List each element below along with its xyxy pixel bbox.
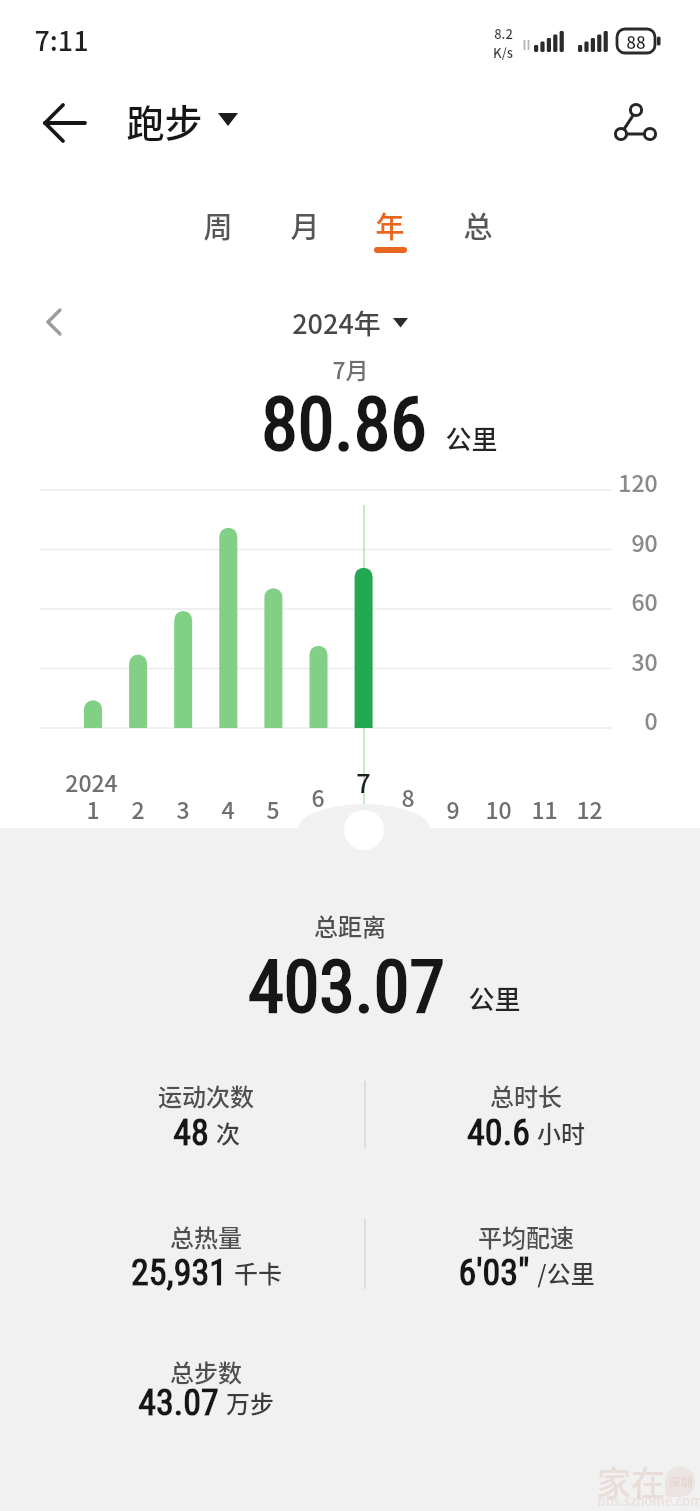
- staticText: 6'03": [458, 1252, 530, 1294]
- staticText: 43.07: [138, 1382, 219, 1424]
- staticText: 120: [618, 465, 658, 498]
- staticText: 1: [86, 792, 100, 825]
- staticText: 总距离: [314, 908, 386, 943]
- staticText: 千卡: [234, 1255, 282, 1290]
- button[interactable]: 2024年: [292, 303, 408, 342]
- button[interactable]: 年: [347, 202, 433, 248]
- button[interactable]: 月: [262, 202, 348, 248]
- staticText: 3: [176, 792, 190, 825]
- staticText: 9: [446, 792, 460, 825]
- staticText: 周: [203, 204, 233, 246]
- staticText: 平均配速: [478, 1219, 574, 1254]
- staticText: 家在: [597, 1457, 665, 1506]
- staticText: 小时: [537, 1115, 585, 1150]
- staticText: 总: [463, 204, 493, 246]
- staticText: 7: [356, 763, 371, 801]
- staticText: 总热量: [170, 1219, 242, 1254]
- button[interactable]: [34, 301, 78, 345]
- staticText: 80.86: [261, 381, 427, 468]
- staticText: 30: [631, 644, 658, 677]
- staticText: 10: [485, 792, 512, 825]
- staticText: 12: [576, 792, 603, 825]
- staticText: 11: [531, 792, 558, 825]
- staticText: 4: [221, 792, 235, 825]
- staticText: 万步: [226, 1385, 274, 1420]
- staticText: 2024年: [292, 303, 381, 342]
- staticText: 48: [173, 1112, 209, 1154]
- staticText: 5: [266, 792, 280, 825]
- staticText: 年: [375, 204, 405, 246]
- staticText: K/s: [493, 43, 513, 62]
- staticText: 公里: [445, 419, 498, 457]
- button[interactable]: 周: [175, 202, 261, 248]
- button[interactable]: [596, 86, 672, 156]
- staticText: 7:11: [34, 20, 89, 59]
- staticText: 次: [216, 1115, 240, 1150]
- staticText: 40.6: [467, 1112, 530, 1154]
- button[interactable]: 跑步: [126, 93, 238, 147]
- staticText: 2: [131, 792, 145, 825]
- staticText: 深圳: [668, 1473, 693, 1490]
- staticText: 2024: [65, 765, 118, 798]
- staticText: 90: [631, 525, 658, 558]
- staticText: 月: [290, 204, 320, 246]
- staticText: 0: [644, 703, 658, 736]
- staticText: bbs.szhome.com: [597, 1491, 700, 1510]
- staticText: 8: [401, 780, 415, 813]
- staticText: /公里: [537, 1255, 595, 1290]
- staticText: 403.07: [248, 945, 445, 1029]
- staticText: 运动次数: [158, 1078, 254, 1113]
- staticText: 跑步: [126, 93, 203, 147]
- staticText: 8.2: [494, 24, 513, 43]
- button[interactable]: [34, 96, 94, 150]
- staticText: 6: [311, 780, 325, 813]
- staticText: 60: [631, 584, 658, 617]
- staticText: 总时长: [490, 1078, 562, 1113]
- staticText: 公里: [468, 979, 521, 1017]
- staticText: 总步数: [170, 1354, 242, 1389]
- staticText: 25,931: [131, 1252, 227, 1294]
- button[interactable]: 总: [435, 202, 521, 248]
- staticText: 7月: [332, 352, 369, 385]
- staticText: 88: [626, 29, 646, 53]
